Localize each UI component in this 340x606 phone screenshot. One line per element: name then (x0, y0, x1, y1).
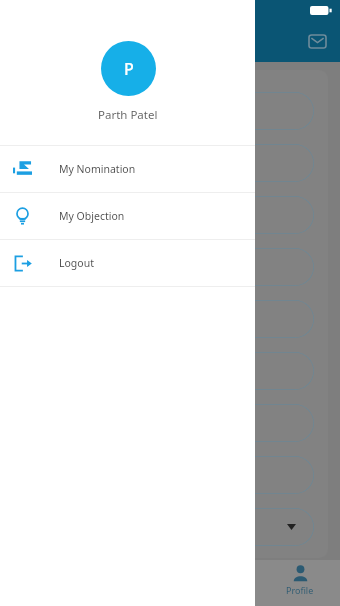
button[interactable] (22, 144, 314, 182)
button[interactable] (22, 404, 314, 442)
button[interactable] (22, 248, 314, 286)
button[interactable] (22, 456, 314, 494)
staticText: My Nomination (59, 162, 136, 176)
staticText: Profile (286, 584, 314, 596)
button[interactable]: My Objection (0, 193, 255, 239)
staticText: My Objection (59, 209, 125, 223)
button[interactable]: Logout (0, 240, 255, 286)
button[interactable] (22, 508, 314, 546)
button[interactable]: Profile (274, 565, 326, 603)
button[interactable] (22, 92, 314, 130)
button[interactable]: Messages (304, 28, 330, 54)
staticText: Parth Patel (98, 107, 158, 123)
button[interactable] (22, 196, 314, 234)
button[interactable] (22, 300, 314, 338)
staticText: P (124, 58, 134, 80)
button[interactable]: My Nomination (0, 146, 255, 192)
button[interactable] (22, 352, 314, 390)
staticText: Logout (59, 256, 94, 270)
